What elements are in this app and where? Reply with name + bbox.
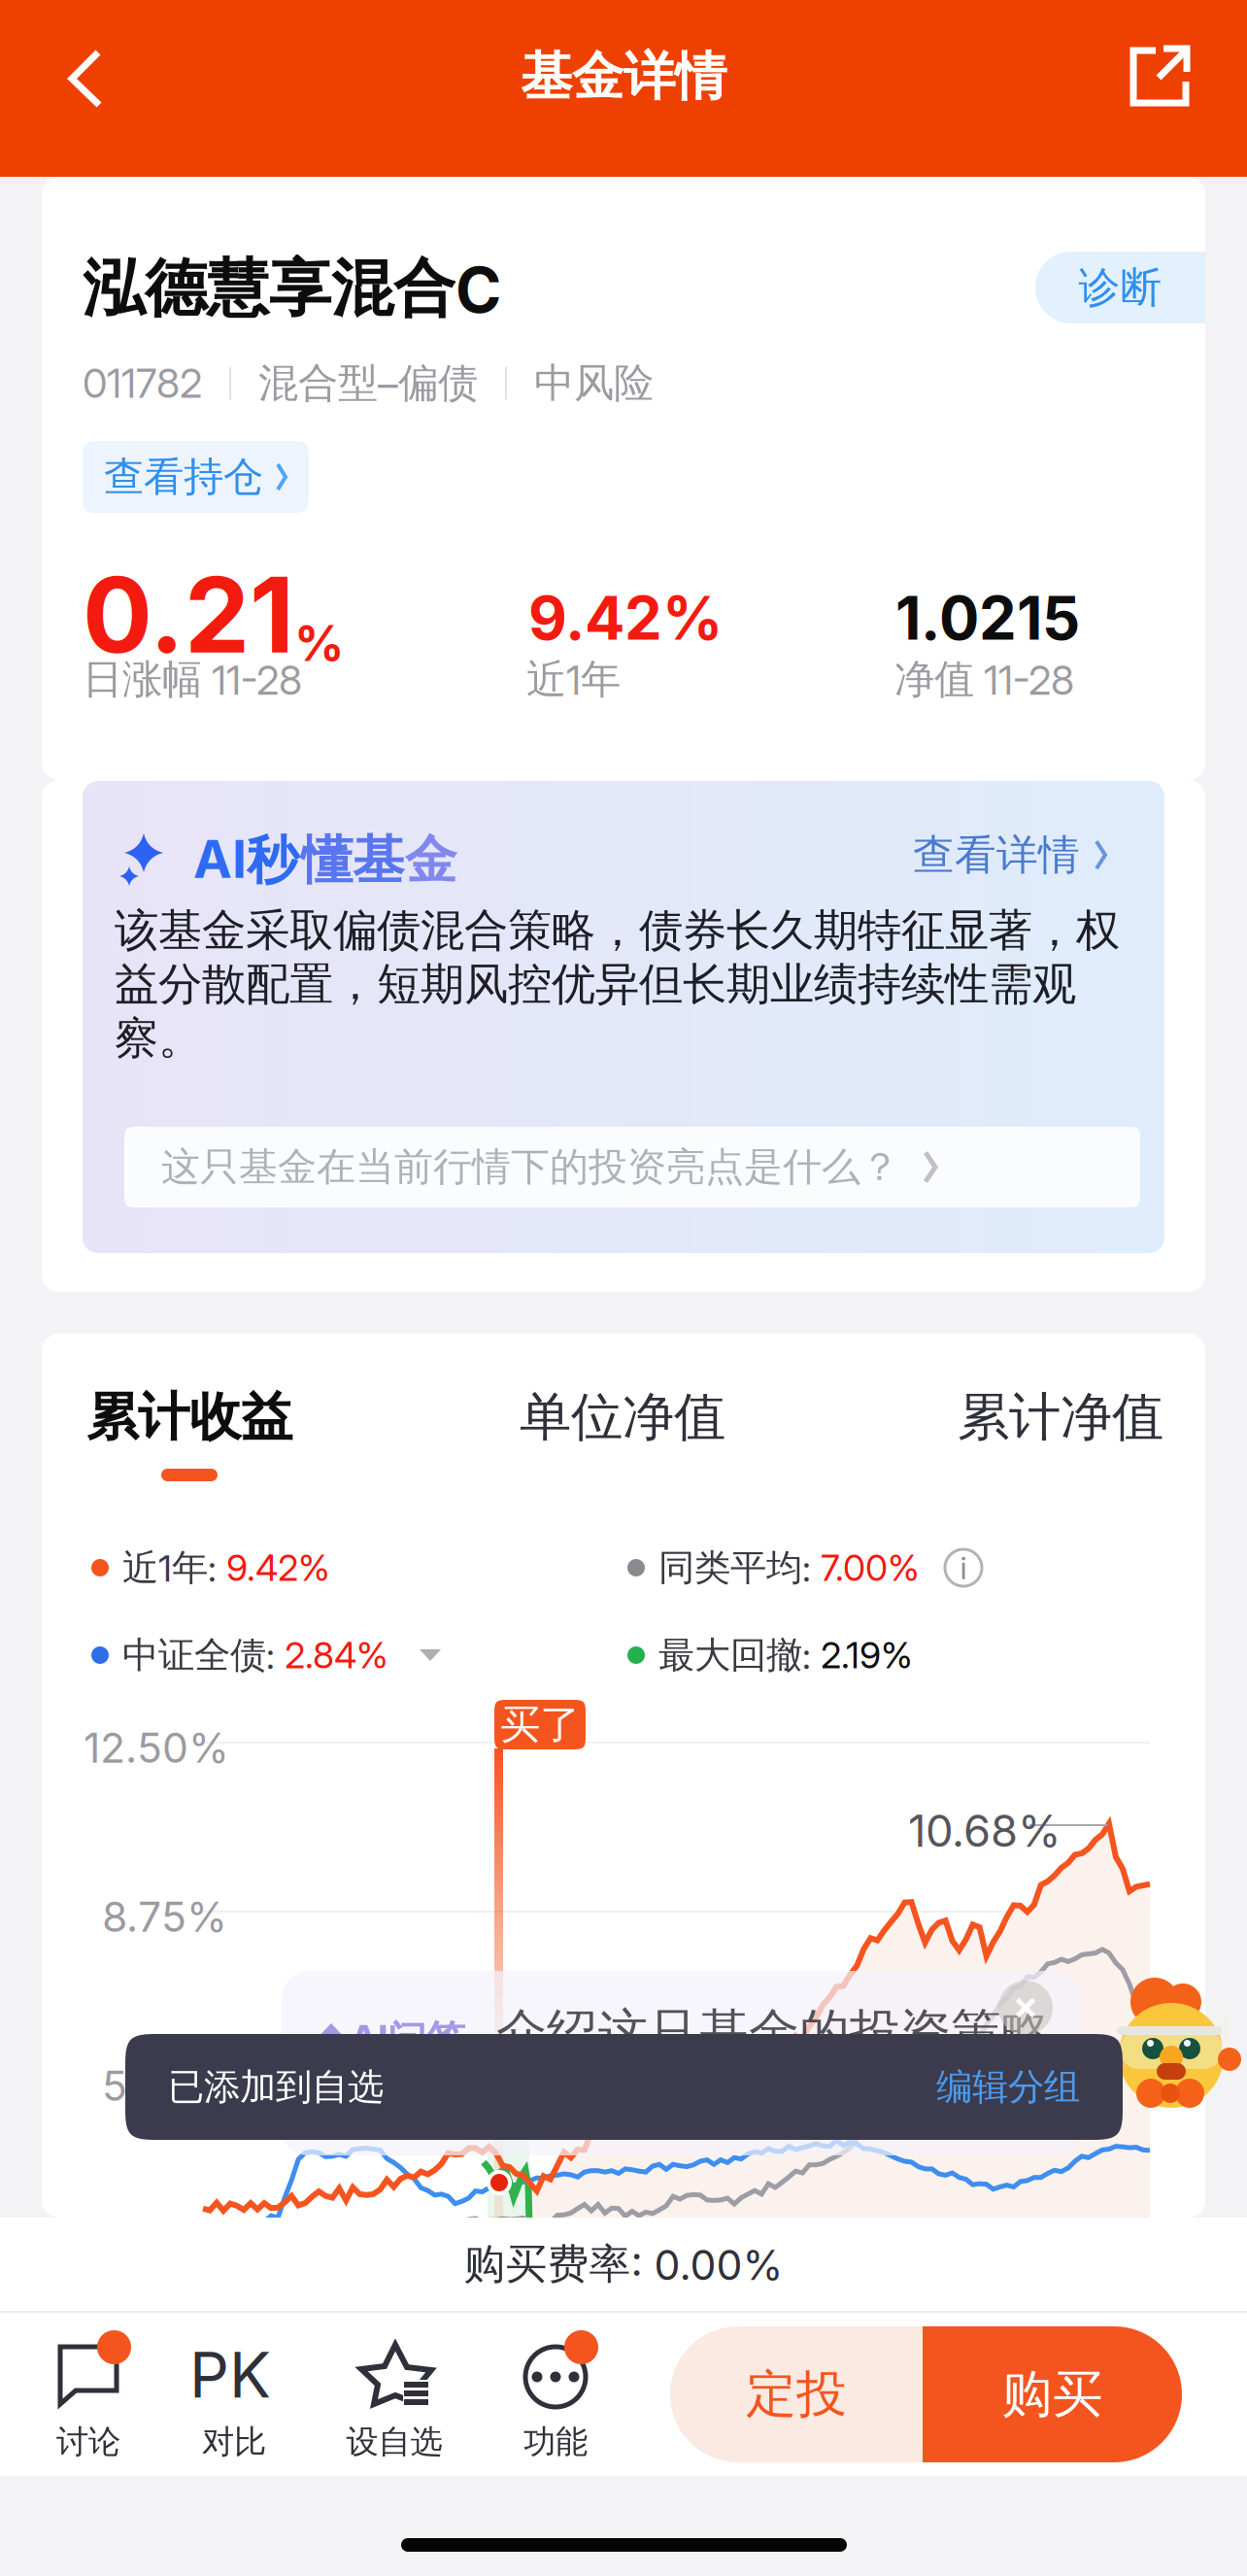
staticText: 买了 [500, 1700, 580, 1749]
staticText: 中风险 [534, 358, 654, 408]
staticText: 净值 11-28 [894, 655, 1074, 704]
staticText: 基金详情 [521, 45, 726, 108]
staticText: AI秒 [193, 829, 298, 893]
button[interactable]: 购买 [923, 2326, 1182, 2462]
button[interactable]: 设自选 [321, 2313, 467, 2476]
staticText: 设自选 [346, 2422, 442, 2462]
staticText: 近1年: [122, 1546, 226, 1590]
staticText: 0.21 [83, 554, 294, 676]
button[interactable]: 查看持仓 [83, 441, 309, 513]
button[interactable]: 累计收益 [84, 1388, 294, 1446]
staticText: i [960, 1549, 967, 1586]
staticText: 泓德慧享混合C [83, 251, 501, 327]
button[interactable]: 编辑分组 [936, 2065, 1080, 2109]
staticText: 9.42% [226, 1546, 330, 1589]
staticText: 已添加到自选 [168, 2065, 384, 2109]
staticText: 12.50% [84, 1723, 229, 1772]
staticText: 2.19% [821, 1634, 913, 1677]
staticText: 诊断 [1078, 262, 1162, 313]
button[interactable]: 诊断 [1035, 252, 1205, 323]
button[interactable]: 关闭 [989, 1971, 1062, 2045]
staticText: 该基金采取偏债混合策略，债券长久期特征显著，权益分散配置，短期风控优异但长期业绩… [115, 903, 1120, 1066]
staticText: 查看详情 [913, 830, 1080, 880]
staticText: 5.00% [102, 2061, 230, 2110]
button[interactable]: 返回 [43, 27, 152, 136]
staticText: 累计净值 [958, 1385, 1163, 1449]
button[interactable]: PK [161, 2313, 307, 2476]
staticText: 7.00% [821, 1546, 920, 1589]
staticText: 定投 [746, 2363, 847, 2425]
staticText: 10.68% [908, 1805, 1062, 1857]
staticText: 最大回撤: [658, 1633, 821, 1678]
staticText: 累计收益 [86, 1385, 292, 1449]
staticText: PK [189, 2338, 271, 2412]
staticText: 混合型–偏债 [258, 358, 478, 408]
staticText: 功能 [523, 2422, 588, 2462]
staticText: 对比 [202, 2422, 266, 2462]
staticText: AI问答 [350, 2016, 465, 2064]
staticText: % [294, 614, 344, 672]
staticText: 这只基金在当前行情下的投资亮点是什么？ [161, 1143, 899, 1191]
staticText: 编辑分组 [936, 2065, 1080, 2109]
staticText: 近1年 [526, 655, 621, 704]
staticText: 懂基 [301, 829, 404, 892]
staticText: 介绍这只基金的投资策略 [465, 2002, 1052, 2064]
staticText: 同类平均: [658, 1546, 821, 1590]
staticText: 购买 [1002, 2363, 1103, 2425]
staticText: 1.0215 [895, 583, 1080, 653]
button[interactable]: 累计净值 [956, 1388, 1165, 1446]
staticText: 购买费率: 0.00% [464, 2239, 783, 2290]
staticText: 2.84% [285, 1634, 388, 1677]
button[interactable]: 功能 [483, 2313, 628, 2476]
staticText: 011782 [83, 359, 202, 407]
button[interactable]: 查看详情 [913, 830, 1107, 880]
staticText: 讨论 [56, 2422, 120, 2462]
button[interactable]: 分享 [1103, 21, 1212, 130]
staticText: 9.42% [528, 583, 723, 653]
staticText: 8.75% [102, 1892, 227, 1941]
staticText: 中证全债: [122, 1633, 285, 1678]
staticText: 单位净值 [520, 1385, 725, 1449]
button[interactable]: 讨论 [16, 2313, 161, 2476]
staticText: 金 [405, 829, 456, 892]
staticText: 日涨幅 11-28 [83, 655, 302, 704]
staticText: 查看持仓 [104, 452, 263, 502]
button[interactable]: 定投 [670, 2326, 923, 2462]
button[interactable]: 单位净值 [518, 1388, 727, 1446]
button[interactable]: 这只基金在当前行情下的投资亮点是什么？ [124, 1127, 1140, 1207]
